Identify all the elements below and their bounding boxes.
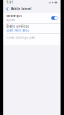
staticText: Ajuste	[6, 18, 15, 22]
staticText: Como obtengo para	[6, 36, 35, 39]
staticText: Mostrar ajus	[6, 14, 21, 18]
button[interactable]: Back	[5, 5, 9, 13]
button[interactable]: Como obtengo para	[3, 34, 61, 45]
staticText: 9:41	[7, 1, 14, 4]
button[interactable]: Enable privilege	[3, 23, 61, 33]
staticText: Enable privilege	[6, 25, 29, 28]
staticText: Mobile lateral	[11, 7, 32, 11]
staticText: Learn more abou	[6, 29, 29, 32]
button[interactable]: Mostrar ajus	[3, 13, 61, 23]
